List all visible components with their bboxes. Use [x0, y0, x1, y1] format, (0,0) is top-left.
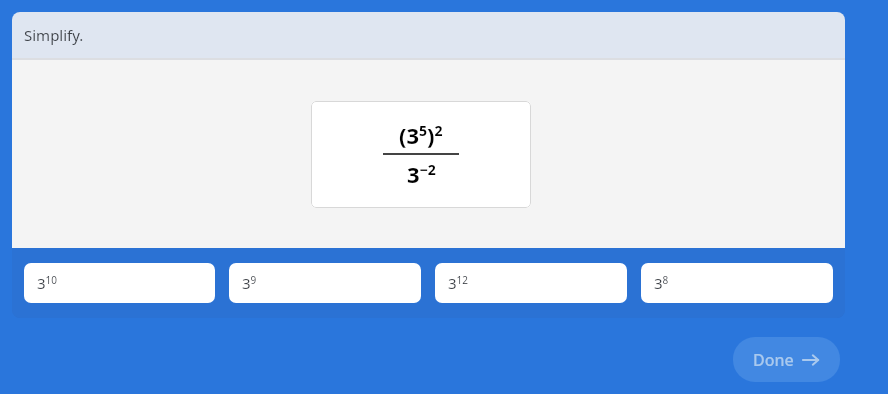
button[interactable]: 310	[24, 263, 215, 303]
staticText: 38	[654, 273, 669, 293]
button[interactable]: 38	[641, 263, 833, 303]
staticText: 312	[448, 273, 469, 293]
staticText: (35)2	[399, 120, 443, 150]
staticText: 39	[242, 273, 257, 293]
button[interactable]: 312	[435, 263, 627, 303]
button[interactable]: 39	[229, 263, 421, 303]
staticText: Simplify.	[24, 25, 84, 45]
staticText: 310	[37, 273, 58, 293]
staticText: 3−2	[407, 159, 436, 189]
button[interactable]: Done	[733, 337, 840, 382]
staticText: Done	[753, 349, 794, 371]
